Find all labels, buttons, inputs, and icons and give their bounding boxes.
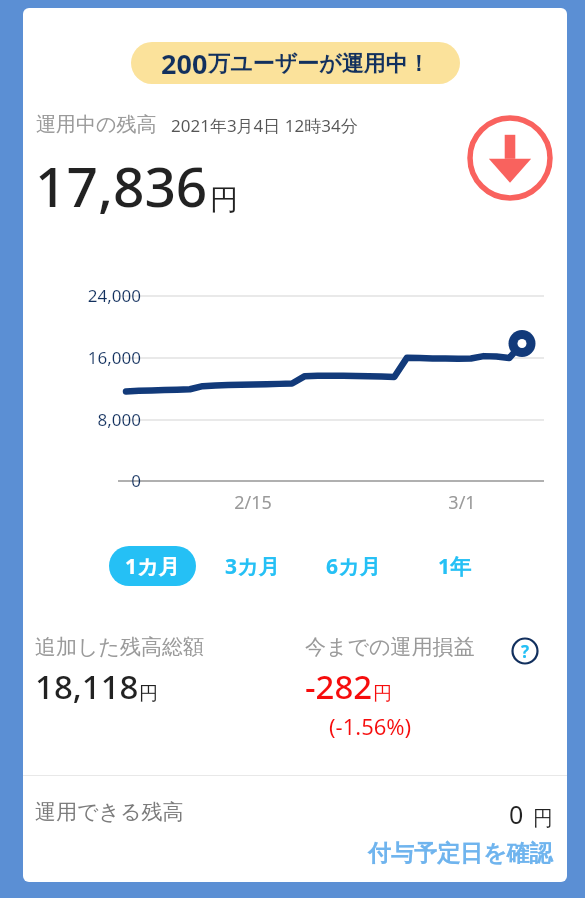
- staticText: 今までの運用損益: [305, 634, 475, 660]
- button[interactable]: 3カ月: [209, 546, 296, 586]
- button[interactable]: 残高を引き出す: [464, 112, 556, 204]
- staticText: 運用できる残高: [35, 799, 184, 825]
- staticText: 8,000: [57, 408, 141, 431]
- staticText: 付与予定日を確認: [368, 839, 553, 868]
- staticText: 1年: [438, 552, 472, 581]
- staticText: 0: [509, 797, 524, 831]
- staticText: 24,000: [57, 284, 141, 307]
- staticText: 6カ月: [326, 552, 381, 581]
- button[interactable]: 1カ月: [109, 546, 196, 586]
- staticText: ?: [521, 640, 530, 663]
- button[interactable]: 6カ月: [310, 546, 397, 586]
- staticText: 17,836: [35, 148, 208, 223]
- button[interactable]: 付与予定日を確認: [363, 833, 553, 873]
- button[interactable]: 運用できる残高: [23, 793, 567, 839]
- staticText: -282: [305, 664, 373, 709]
- staticText: 運用中の残高: [36, 112, 157, 137]
- staticText: 3/1: [422, 490, 502, 515]
- button[interactable]: 運用損益についてのヘルプ: [511, 637, 539, 665]
- staticText: 追加した残高総額: [35, 634, 204, 660]
- staticText: 万ユーザーが運用中！: [208, 50, 430, 78]
- staticText: 2021年3月4日 12時34分: [171, 114, 358, 137]
- staticText: 18,118: [35, 664, 139, 709]
- staticText: (-1.56%): [329, 711, 412, 741]
- staticText: 円: [373, 682, 392, 706]
- staticText: 1カ月: [125, 552, 180, 581]
- staticText: 2/15: [213, 490, 293, 515]
- staticText: 0: [57, 469, 141, 492]
- staticText: 円: [210, 182, 238, 217]
- staticText: 200: [161, 45, 208, 82]
- button[interactable]: 1年: [411, 546, 498, 586]
- staticText: 3カ月: [225, 552, 280, 581]
- staticText: 16,000: [57, 346, 141, 369]
- staticText: 円: [533, 806, 553, 831]
- staticText: 円: [139, 682, 158, 706]
- button[interactable]: 200: [131, 42, 460, 84]
